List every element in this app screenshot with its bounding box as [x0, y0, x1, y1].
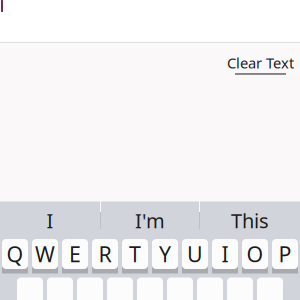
staticText: T [129, 240, 141, 268]
button[interactable]: I [212, 242, 238, 273]
staticText: R [98, 240, 111, 268]
button[interactable]: E [62, 242, 88, 273]
staticText: Q [6, 240, 23, 268]
staticText: I [221, 240, 228, 268]
staticText: Y [159, 240, 171, 268]
staticText: I [46, 207, 53, 234]
button[interactable]: I'm [101, 201, 199, 239]
button[interactable]: Clear Text [227, 53, 294, 74]
staticText: O [246, 240, 263, 268]
staticText: This [231, 207, 269, 234]
button[interactable]: R [92, 242, 118, 273]
staticText: U [187, 240, 203, 268]
button[interactable]: This [200, 201, 300, 239]
button[interactable]: I [0, 201, 100, 239]
staticText: E [69, 240, 81, 268]
button[interactable]: O [242, 242, 268, 273]
button[interactable]: T [122, 242, 148, 273]
button[interactable]: P [272, 242, 298, 273]
button[interactable]: Y [152, 242, 178, 273]
staticText: W [35, 240, 55, 268]
button[interactable]: U [182, 242, 208, 273]
staticText: P [278, 240, 291, 268]
staticText: I'm [135, 207, 165, 234]
button[interactable]: W [32, 242, 58, 273]
staticText: Clear Text [227, 53, 294, 72]
button[interactable]: Q [2, 242, 28, 273]
